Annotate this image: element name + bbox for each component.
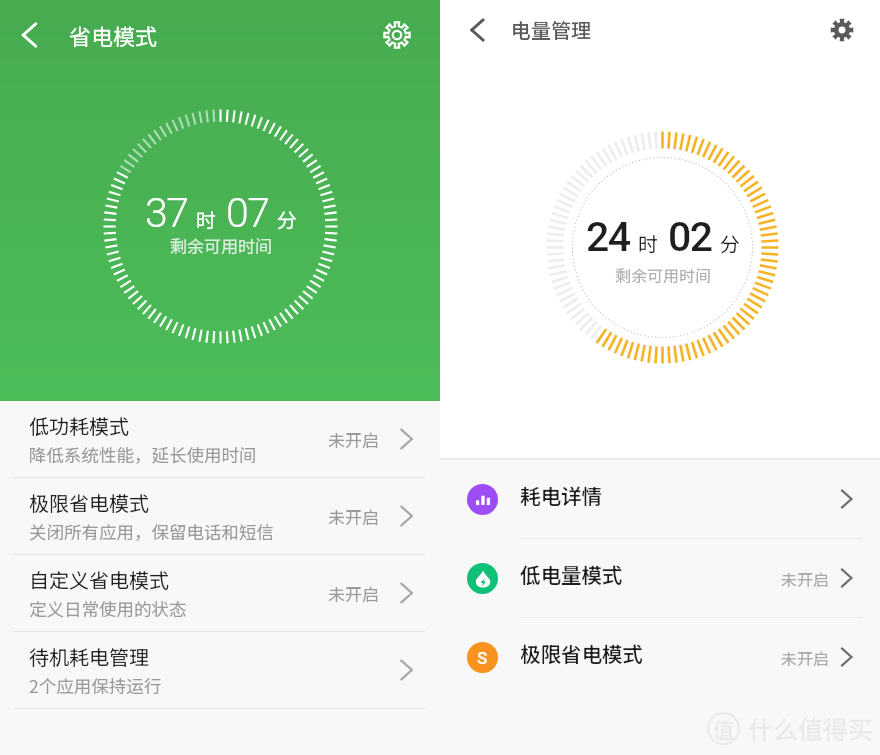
- button[interactable]: 低功耗模式: [0, 401, 440, 478]
- staticText: 07: [226, 189, 269, 237]
- staticText: 电量管理: [511, 15, 591, 44]
- staticText: 极限省电模式: [29, 488, 149, 517]
- button[interactable]: Back: [0, 0, 58, 70]
- staticText: 关闭所有应用，保留电话和短信: [29, 519, 274, 544]
- staticText: 什么值得买: [748, 710, 874, 746]
- staticText: 未开启: [781, 646, 830, 669]
- staticText: 未开启: [328, 581, 379, 606]
- staticText: S: [477, 648, 488, 668]
- staticText: 剩余可用时间: [170, 233, 272, 258]
- staticText: 分: [277, 205, 297, 234]
- button[interactable]: 自定义省电模式: [0, 555, 440, 632]
- staticText: 省电模式: [69, 19, 158, 51]
- button[interactable]: 低电量模式: [440, 539, 880, 618]
- staticText: 低功耗模式: [29, 411, 129, 440]
- staticText: 降低系统性能，延长使用时间: [29, 442, 257, 467]
- staticText: 低电量模式: [520, 559, 623, 589]
- staticText: 待机耗电管理: [29, 642, 149, 671]
- button[interactable]: 极限省电模式: [0, 478, 440, 555]
- staticText: 2个应用保持运行: [29, 673, 162, 698]
- staticText: 37: [145, 189, 188, 237]
- staticText: 24: [586, 213, 630, 261]
- staticText: 自定义省电模式: [29, 565, 169, 594]
- button[interactable]: 耗电详情: [440, 460, 880, 539]
- staticText: 未开启: [328, 504, 379, 529]
- staticText: 未开启: [328, 427, 379, 452]
- staticText: 02: [668, 213, 712, 261]
- staticText: 耗电详情: [520, 480, 602, 510]
- button[interactable]: S: [440, 618, 880, 697]
- staticText: 极限省电模式: [520, 638, 643, 668]
- button[interactable]: 待机耗电管理: [0, 632, 440, 709]
- staticText: 剩余可用时间: [615, 263, 712, 286]
- staticText: 未开启: [781, 567, 830, 590]
- staticText: 定义日常使用的状态: [29, 596, 187, 621]
- staticText: 时: [638, 229, 658, 258]
- staticText: 分: [720, 229, 740, 258]
- staticText: 时: [196, 205, 216, 234]
- button[interactable]: Back: [451, 4, 503, 56]
- button[interactable]: Settings: [362, 0, 432, 70]
- staticText: 值: [713, 714, 734, 744]
- button[interactable]: Settings: [816, 4, 868, 56]
